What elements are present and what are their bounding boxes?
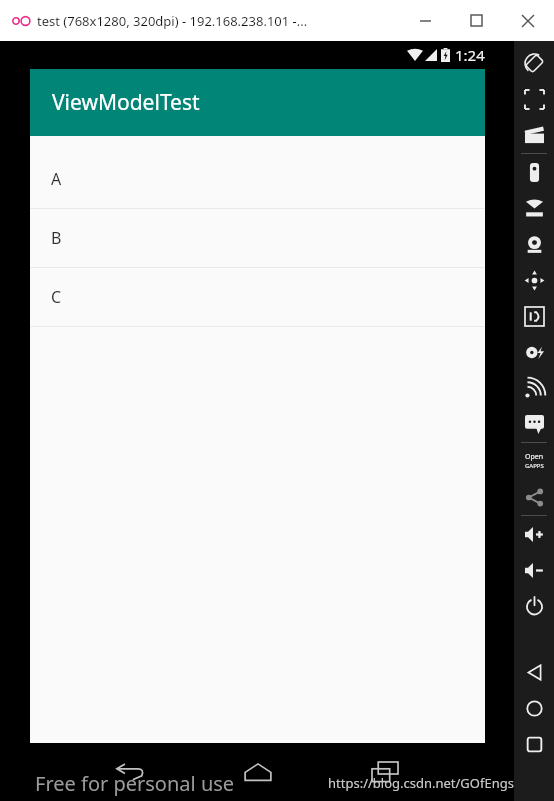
button[interactable]: Battery bbox=[514, 334, 554, 370]
button[interactable]: Zoom bbox=[514, 81, 554, 117]
staticText: Free for personal use bbox=[35, 770, 235, 797]
button[interactable]: Back bbox=[514, 654, 554, 690]
staticText: test (768x1280, 320dpi) - 192.168.238.10… bbox=[37, 12, 308, 30]
button[interactable]: Volume down bbox=[514, 552, 554, 588]
button[interactable]: Back bbox=[102, 750, 158, 794]
button[interactable]: Maximize bbox=[450, 0, 502, 41]
button[interactable]: Messages bbox=[514, 406, 554, 442]
button[interactable]: Overview bbox=[514, 726, 554, 762]
staticText: A bbox=[51, 168, 62, 190]
staticText: ViewModelTest bbox=[52, 88, 200, 117]
button[interactable]: Home bbox=[514, 690, 554, 726]
button[interactable]: D-pad bbox=[514, 262, 554, 298]
button[interactable]: Location GPS bbox=[514, 190, 554, 226]
button[interactable]: C bbox=[30, 268, 485, 326]
button[interactable]: Close bbox=[502, 0, 554, 41]
button[interactable]: Cellular bbox=[514, 370, 554, 406]
button[interactable]: Volume up bbox=[514, 516, 554, 552]
staticText: C bbox=[51, 286, 62, 308]
staticText: B bbox=[51, 227, 62, 249]
button[interactable]: Device ID bbox=[514, 298, 554, 334]
button[interactable]: Record screen bbox=[514, 117, 554, 153]
button[interactable]: Recents bbox=[357, 750, 413, 794]
staticText: 1:24 bbox=[455, 45, 485, 65]
button[interactable]: Open GAPPS bbox=[514, 443, 554, 479]
button[interactable]: Power bbox=[514, 588, 554, 624]
staticText: https://blog.csdn.net/GOfEngs bbox=[328, 774, 514, 792]
button[interactable]: Share bbox=[514, 479, 554, 515]
button[interactable]: A bbox=[30, 150, 485, 208]
button[interactable]: Virtual sensors bbox=[514, 154, 554, 190]
staticText: Open bbox=[525, 452, 544, 462]
button[interactable]: B bbox=[30, 209, 485, 267]
button[interactable]: Home bbox=[230, 750, 286, 794]
button[interactable]: Rotate bbox=[514, 45, 554, 81]
button[interactable]: Minimize bbox=[400, 0, 450, 41]
staticText: GAPPS bbox=[525, 462, 544, 470]
button[interactable]: Camera bbox=[514, 226, 554, 262]
